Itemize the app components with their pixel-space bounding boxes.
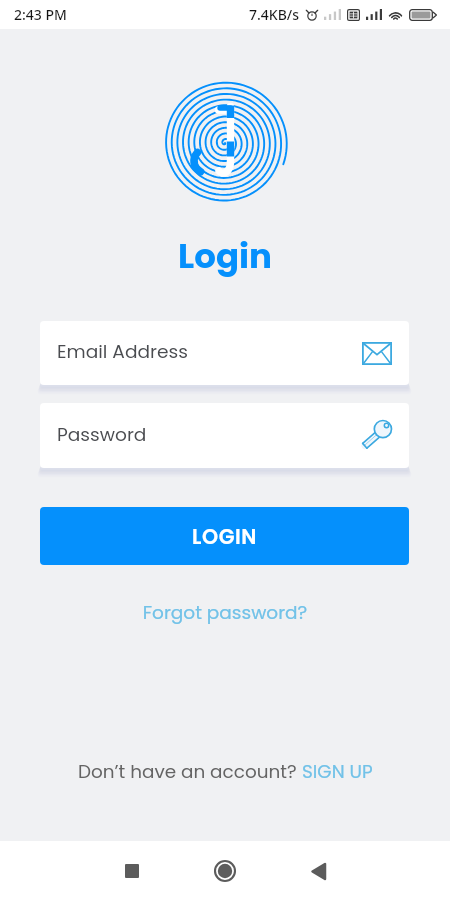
staticText: Login xyxy=(0,232,450,280)
other: Email xyxy=(362,342,392,365)
button[interactable]: Email Address xyxy=(40,321,409,385)
staticText: 2:43 PM xyxy=(14,5,67,24)
button[interactable]: Forgot password? xyxy=(0,600,450,626)
button[interactable]: Back xyxy=(298,851,338,891)
button[interactable]: SIGN UP xyxy=(302,759,373,785)
button[interactable]: Password xyxy=(40,403,409,468)
button[interactable]: Recent apps xyxy=(112,851,152,891)
staticText: Don’t have an account? xyxy=(78,759,302,785)
staticText: 7.4KB/s xyxy=(249,5,300,24)
button[interactable]: Home xyxy=(205,851,245,891)
other: Password xyxy=(362,418,394,449)
staticText: LOGIN xyxy=(192,522,258,551)
staticText: Password xyxy=(57,421,360,447)
button[interactable]: LOGIN xyxy=(40,507,409,565)
staticText: Email Address xyxy=(57,338,362,364)
